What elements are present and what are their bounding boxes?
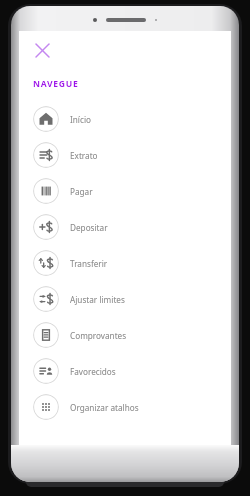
- staticText: Comprovantes: [70, 330, 127, 341]
- staticText: Depositar: [70, 222, 108, 233]
- button[interactable]: Depositar: [25, 209, 231, 245]
- staticText: Extrato: [70, 150, 98, 161]
- staticText: Transferir: [70, 258, 108, 269]
- button[interactable]: Pagar: [25, 173, 231, 209]
- button[interactable]: Fechar: [29, 37, 55, 63]
- staticText: Organizar atalhos: [70, 402, 139, 413]
- button[interactable]: Favorecidos: [25, 353, 231, 389]
- staticText: NAVEGUE: [33, 78, 79, 90]
- button[interactable]: Transferir: [25, 245, 231, 281]
- staticText: Início: [70, 114, 91, 125]
- staticText: Favorecidos: [70, 366, 116, 377]
- button[interactable]: Início: [25, 101, 231, 137]
- button[interactable]: Organizar atalhos: [25, 389, 231, 425]
- button[interactable]: Extrato: [25, 137, 231, 173]
- staticText: Pagar: [70, 186, 93, 197]
- button[interactable]: Ajustar limites: [25, 281, 231, 317]
- button[interactable]: Comprovantes: [25, 317, 231, 353]
- staticText: Ajustar limites: [70, 294, 125, 305]
